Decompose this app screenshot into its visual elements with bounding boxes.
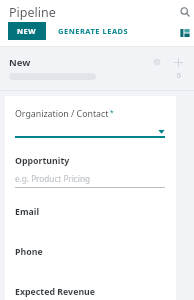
button[interactable]: GENERATE LEADS bbox=[52, 22, 135, 40]
staticText: 0 bbox=[177, 71, 181, 80]
staticText: * bbox=[110, 108, 114, 117]
button[interactable]: Stage settings bbox=[149, 54, 165, 70]
button[interactable] bbox=[15, 120, 165, 136]
staticText: Phone bbox=[15, 246, 43, 258]
staticText: Opportunity bbox=[15, 155, 70, 167]
button[interactable]: NEW bbox=[8, 22, 46, 40]
staticText: Pipeline bbox=[9, 4, 56, 21]
button[interactable]: Chart view bbox=[177, 25, 193, 41]
button[interactable]: Expected Revenue bbox=[5, 286, 176, 298]
staticText: Expected Revenue bbox=[15, 286, 96, 298]
button[interactable]: e.g. Product Pricing bbox=[15, 173, 165, 184]
button[interactable]: Email bbox=[5, 206, 176, 218]
staticText: New bbox=[9, 56, 31, 69]
staticText: GENERATE LEADS bbox=[58, 26, 129, 36]
button[interactable]: Search bbox=[177, 4, 193, 20]
staticText: Email bbox=[15, 206, 40, 218]
button[interactable]: Phone bbox=[5, 246, 176, 258]
staticText: Organization / Contact bbox=[15, 108, 109, 120]
staticText: e.g. Product Pricing bbox=[15, 173, 90, 184]
staticText: NEW bbox=[17, 26, 37, 36]
button[interactable]: Add opportunity bbox=[170, 54, 186, 70]
